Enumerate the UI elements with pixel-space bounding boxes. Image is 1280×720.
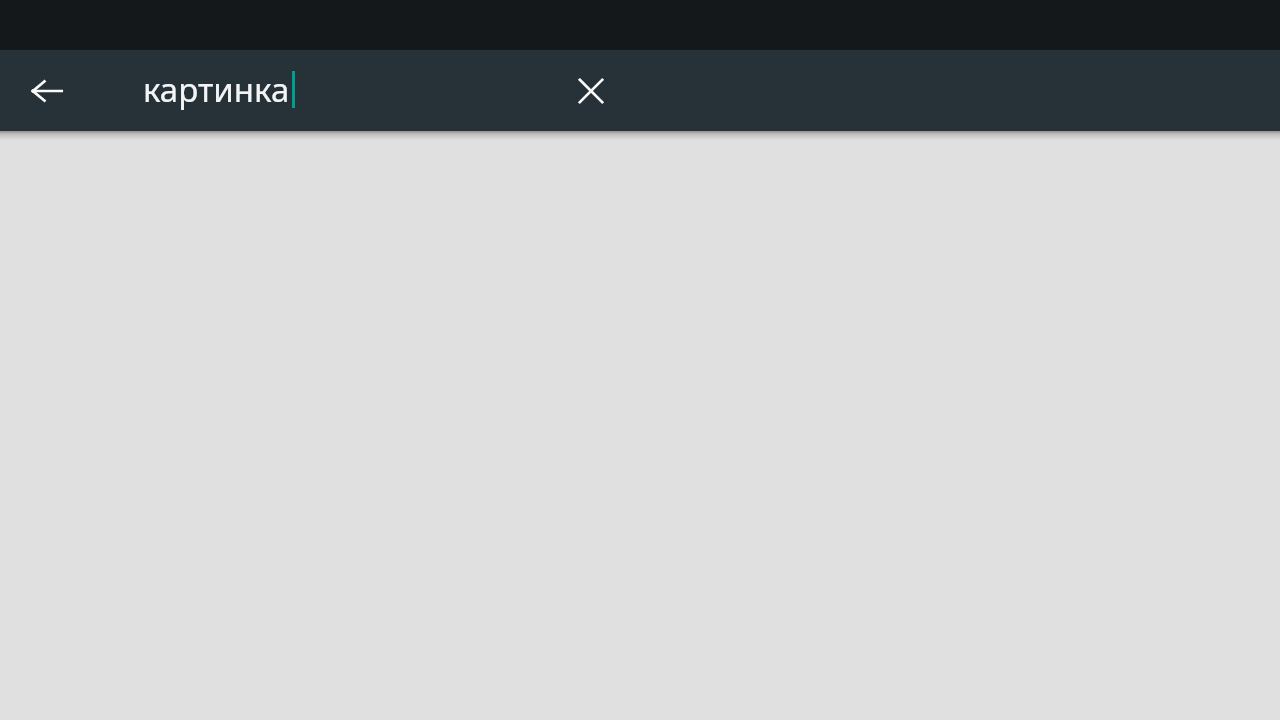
staticText: картинка xyxy=(143,67,290,112)
button[interactable]: Back xyxy=(14,58,80,124)
button[interactable]: Clear query xyxy=(558,58,624,124)
